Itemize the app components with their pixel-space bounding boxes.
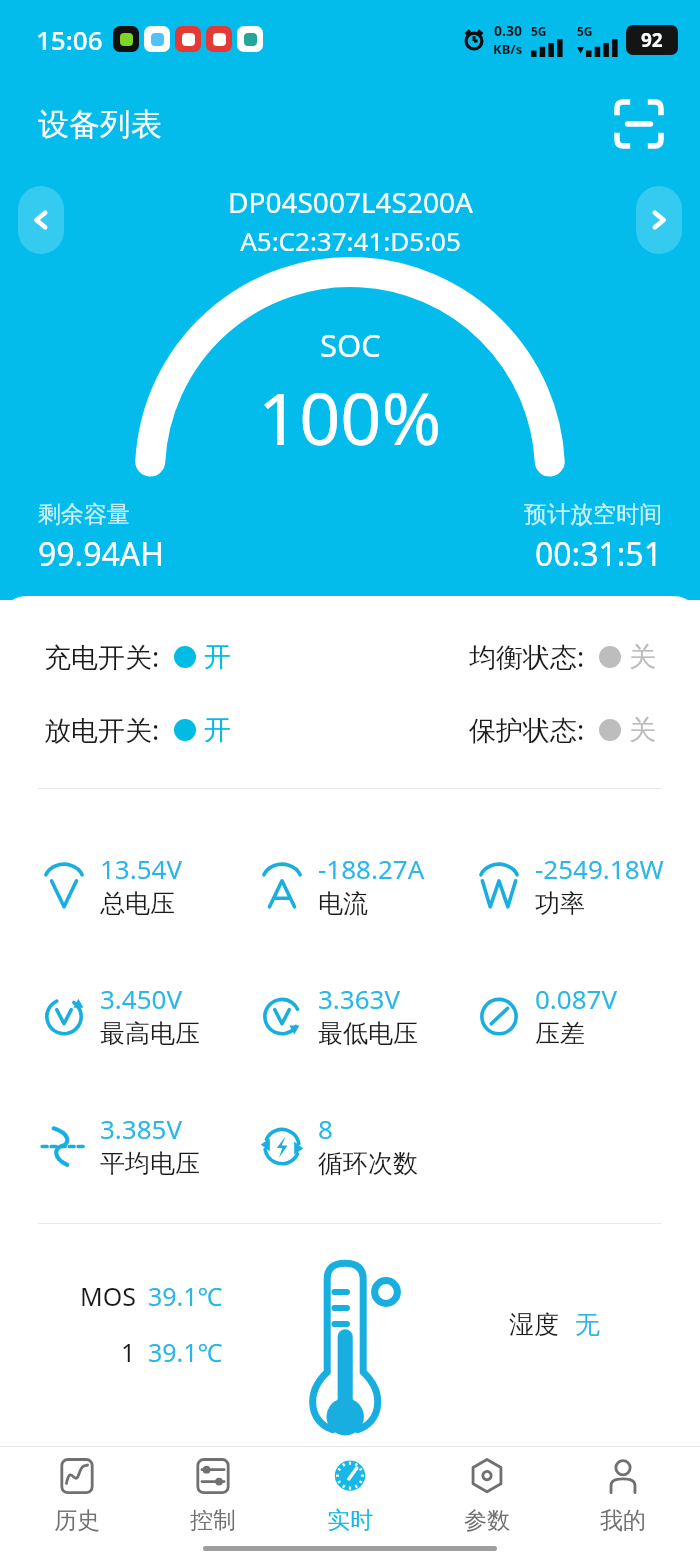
staticText: 关	[629, 713, 656, 747]
staticText: 实时	[327, 1506, 373, 1535]
staticText: 湿度	[509, 1309, 559, 1340]
staticText: 剩余容量	[38, 500, 130, 529]
staticText: 最低电压	[318, 1018, 418, 1049]
button[interactable]: -188.27A	[242, 851, 459, 919]
staticText: 100%	[258, 368, 442, 466]
staticText: 预计放空时间	[524, 500, 662, 529]
staticText: 0.087V	[535, 981, 618, 1016]
button[interactable]: 历史	[17, 1450, 137, 1539]
staticText: 3.363V	[318, 981, 401, 1016]
staticText: 8	[318, 1111, 333, 1146]
button[interactable]: 实时	[290, 1450, 410, 1539]
staticText: 39.1℃	[148, 1279, 223, 1313]
staticText: 39.1℃	[148, 1335, 223, 1369]
staticText: DP04S007L4S200A	[228, 183, 473, 221]
staticText: 电流	[318, 888, 368, 919]
staticText: 3.450V	[100, 981, 183, 1016]
staticText: 最高电压	[100, 1018, 200, 1049]
staticText: SOC	[320, 324, 381, 366]
button[interactable]: -2549.18W	[459, 851, 676, 919]
staticText: 5G	[577, 23, 593, 39]
staticText: 充电开关:	[44, 638, 160, 675]
staticText: 5G	[531, 23, 547, 39]
staticText: 我的	[600, 1506, 646, 1535]
button[interactable]: 13.54V	[24, 851, 242, 919]
staticText: 13.54V	[100, 851, 183, 886]
staticText: 15:06	[36, 22, 103, 57]
staticText: 保护状态:	[469, 711, 585, 748]
staticText: 历史	[54, 1506, 100, 1535]
staticText: -188.27A	[318, 851, 425, 886]
staticText: 均衡状态:	[469, 638, 585, 675]
staticText: 设备列表	[38, 105, 162, 144]
button[interactable]: 保护状态:	[469, 707, 656, 752]
staticText: 92	[641, 27, 663, 53]
staticText: MOS	[80, 1279, 136, 1313]
staticText: 参数	[464, 1506, 510, 1535]
button[interactable]: 3.363V	[242, 981, 459, 1049]
button[interactable]: 我的	[563, 1450, 683, 1539]
button[interactable]: 放电开关:	[44, 707, 231, 752]
button[interactable]: Scan	[608, 93, 670, 155]
staticText: 控制	[190, 1506, 236, 1535]
staticText: 3.385V	[100, 1111, 183, 1146]
staticText: -2549.18W	[535, 851, 664, 886]
staticText: 开	[204, 640, 231, 674]
staticText: 功率	[535, 888, 585, 919]
button[interactable]: 3.450V	[24, 981, 242, 1049]
button[interactable]: 控制	[153, 1450, 273, 1539]
staticText: 放电开关:	[44, 711, 160, 748]
staticText: 平均电压	[100, 1148, 200, 1179]
staticText: 1	[121, 1335, 136, 1369]
button[interactable]: Previous device	[18, 186, 64, 254]
staticText: 0.30	[494, 21, 522, 40]
staticText: 压差	[535, 1018, 585, 1049]
button[interactable]: 0.087V	[459, 981, 676, 1049]
button[interactable]: 8	[242, 1111, 459, 1179]
button[interactable]: Next device	[636, 186, 682, 254]
staticText: 00:31:51	[535, 532, 662, 576]
staticText: A5:C2:37:41:D5:05	[240, 223, 461, 258]
staticText: 开	[204, 713, 231, 747]
staticText: 循环次数	[318, 1148, 418, 1179]
staticText: 总电压	[100, 888, 175, 919]
button[interactable]: 充电开关:	[44, 634, 231, 679]
button[interactable]: 参数	[427, 1450, 547, 1539]
staticText: 无	[575, 1309, 600, 1340]
staticText: KB/s	[493, 40, 523, 58]
button[interactable]: 3.385V	[24, 1111, 242, 1179]
staticText: 关	[629, 640, 656, 674]
button[interactable]: 均衡状态:	[469, 634, 656, 679]
staticText: 99.94AH	[38, 532, 164, 576]
